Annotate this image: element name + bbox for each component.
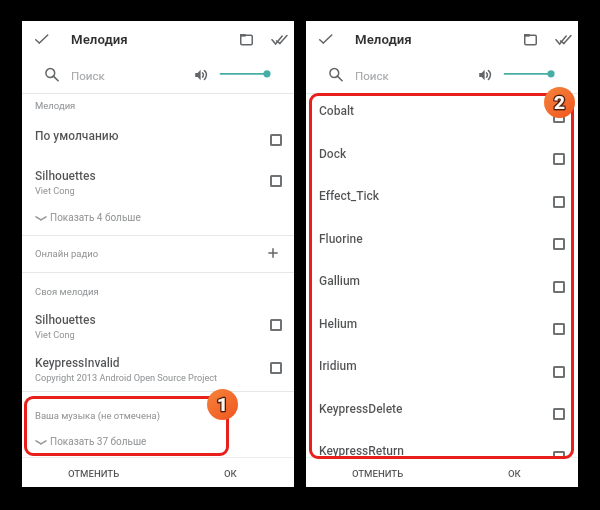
button[interactable]: Helium	[306, 308, 578, 340]
staticText: Copyright 2013 Android Open Source Proje…	[35, 372, 218, 383]
staticText: Показать 4 больше	[50, 212, 141, 224]
button[interactable]: Confirm selection	[313, 26, 339, 52]
staticText: Silhouettes	[35, 169, 96, 183]
button[interactable]: Volume slider	[215, 66, 275, 83]
button[interactable]: Показать 4 больше	[22, 206, 294, 230]
staticText: Gallium	[319, 274, 360, 288]
staticText: 1	[217, 393, 228, 415]
staticText: Cobalt	[319, 104, 354, 118]
button[interactable]: Search	[39, 62, 64, 87]
button[interactable]: Gallium	[306, 265, 578, 297]
staticText: Мелодия	[71, 32, 128, 48]
staticText: 2	[554, 91, 565, 113]
staticText: 1	[217, 393, 228, 415]
staticText: KeypressDelete	[319, 402, 403, 416]
staticText: Viet Cong	[35, 329, 75, 340]
staticText: 2	[554, 91, 565, 113]
button[interactable]: Select all	[265, 26, 291, 52]
button[interactable]: KeypressInvalid	[22, 351, 294, 389]
staticText: KeypressReturn	[319, 444, 404, 457]
staticText: Своя мелодия	[35, 286, 99, 297]
button[interactable]: Volume slider	[499, 66, 559, 83]
staticText: Fluorine	[319, 232, 363, 246]
button[interactable]: Select all	[549, 26, 575, 52]
button[interactable]: Confirm selection	[29, 26, 55, 52]
staticText: Helium	[319, 317, 358, 331]
button[interactable]: ОТМЕНИТЬ	[36, 458, 152, 488]
button[interactable]: Open folder	[517, 26, 543, 52]
staticText: ОК	[508, 468, 521, 479]
button[interactable]: Volume	[472, 62, 497, 87]
staticText: Viet Cong	[35, 185, 75, 196]
button[interactable]: ОК	[466, 458, 562, 488]
button[interactable]: ОК	[182, 458, 278, 488]
button[interactable]: Показать 37 больше	[22, 430, 294, 454]
staticText: Поиск	[71, 69, 105, 82]
button[interactable]: Open folder	[233, 26, 259, 52]
button[interactable]: Fluorine	[306, 223, 578, 255]
staticText: Поиск	[355, 69, 389, 82]
staticText: Ваша музыка (не отмечена)	[35, 410, 160, 421]
button[interactable]: Онлайн радио	[22, 237, 294, 269]
staticText: Показать 37 больше	[50, 436, 147, 448]
staticText: ОТМЕНИТЬ	[68, 468, 120, 479]
staticText: KeypressInvalid	[35, 356, 120, 370]
button[interactable]: Silhouettes	[22, 308, 294, 346]
button[interactable]: KeypressDelete	[306, 393, 578, 425]
button[interactable]: ОТМЕНИТЬ	[320, 458, 436, 488]
button[interactable]: По умолчанию	[22, 120, 294, 152]
button[interactable]: Silhouettes	[22, 164, 294, 202]
button[interactable]: KeypressReturn	[306, 435, 578, 457]
button[interactable]: Cobalt	[306, 95, 578, 127]
staticText: Dock	[319, 147, 347, 161]
staticText: Silhouettes	[35, 313, 96, 327]
button[interactable]: Volume	[188, 62, 213, 87]
staticText: Effect_Tick	[319, 189, 380, 203]
button[interactable]: Search	[323, 62, 348, 87]
staticText: По умолчанию	[35, 129, 119, 143]
staticText: Онлайн радио	[35, 248, 99, 259]
staticText: Мелодия	[35, 100, 76, 111]
staticText: Iridium	[319, 359, 357, 373]
button[interactable]: Effect_Tick	[306, 180, 578, 212]
staticText: Мелодия	[355, 32, 412, 48]
staticText: ОК	[224, 468, 237, 479]
button[interactable]: Dock	[306, 138, 578, 170]
button[interactable]: Iridium	[306, 350, 578, 382]
staticText: ОТМЕНИТЬ	[352, 468, 404, 479]
